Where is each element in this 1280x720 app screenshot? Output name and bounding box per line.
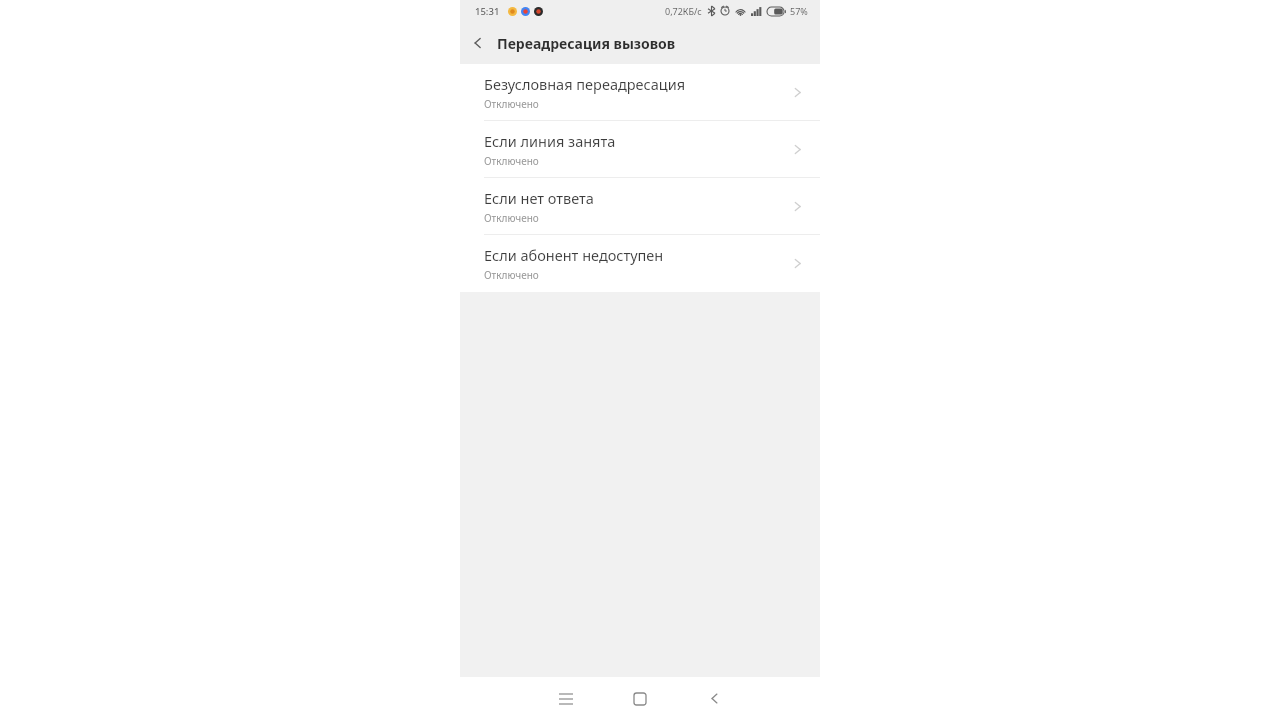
staticText: 15:31 xyxy=(475,5,500,18)
button[interactable]: Если нет ответа xyxy=(460,178,820,235)
staticText: 57% xyxy=(790,5,808,17)
staticText: Если абонент недоступен xyxy=(484,245,664,265)
button[interactable]: Если линия занята xyxy=(460,121,820,178)
staticText: Переадресация вызовов xyxy=(497,34,676,53)
button[interactable]: Назад xyxy=(678,677,751,720)
button[interactable]: Главная xyxy=(602,677,678,720)
button[interactable]: Меню xyxy=(529,677,602,720)
staticText: Безусловная переадресация xyxy=(484,74,686,94)
staticText: Отключено xyxy=(484,97,539,111)
staticText: 0,72КБ/с xyxy=(665,5,702,17)
button[interactable]: Безусловная переадресация xyxy=(460,64,820,121)
staticText: Отключено xyxy=(484,154,539,168)
staticText: Если нет ответа xyxy=(484,188,594,208)
staticText: Если линия занята xyxy=(484,131,616,151)
button[interactable]: Назад xyxy=(460,22,496,64)
staticText: Отключено xyxy=(484,268,539,282)
button[interactable]: Если абонент недоступен xyxy=(460,235,820,292)
staticText: Отключено xyxy=(484,211,539,225)
